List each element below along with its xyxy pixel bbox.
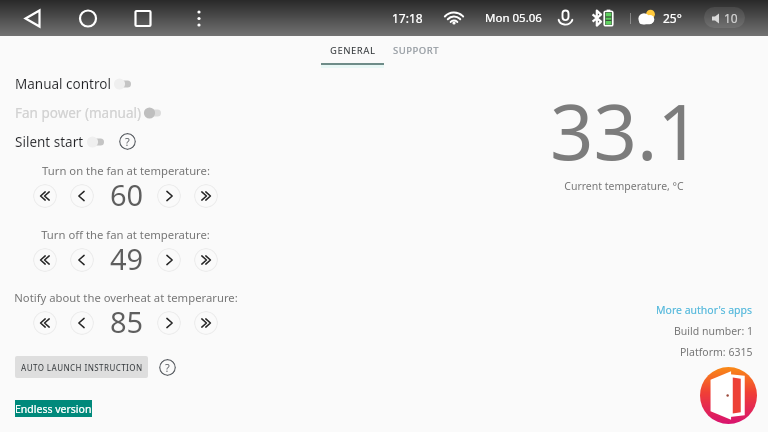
button[interactable]: Decrease fast [33, 184, 57, 208]
button[interactable]: Increase fast [194, 184, 218, 208]
button[interactable]: Manual control [15, 72, 135, 96]
staticText: GENERAL [330, 44, 376, 57]
staticText: 85 [110, 302, 144, 338]
staticText: 17:18 [392, 10, 423, 26]
staticText: 60 [110, 175, 144, 211]
button[interactable]: Help [159, 359, 176, 376]
button[interactable]: Volume [704, 7, 745, 28]
button[interactable]: More options [186, 5, 212, 31]
button[interactable]: Decrease [70, 311, 94, 335]
staticText: ? [125, 134, 130, 149]
button[interactable]: Fan power (manual) [15, 101, 165, 125]
button[interactable]: Decrease [70, 248, 94, 272]
button[interactable]: Home [74, 5, 102, 33]
button[interactable]: Back [18, 5, 46, 33]
staticText: Fan power (manual) [15, 104, 141, 122]
staticText: Turn on the fan at temperature: [42, 163, 210, 178]
staticText: Manual control [15, 75, 111, 93]
staticText: Mon 05.06 [485, 10, 542, 26]
staticText: Current temperature, °C [564, 179, 684, 193]
staticText: AUTO LAUNCH INSTRUCTION [21, 362, 143, 373]
button[interactable]: Endless version [15, 400, 92, 417]
staticText: ? [165, 360, 170, 375]
staticText: Notify about the overheat at temperarure… [14, 290, 238, 305]
staticText: Turn off the fan at temperature: [41, 227, 210, 242]
staticText: Build number: 1 [674, 324, 753, 338]
staticText: Platform: 6315 [680, 345, 753, 359]
staticText: SUPPORT [393, 44, 440, 57]
staticText: 49 [110, 239, 144, 275]
button[interactable]: Increase [157, 311, 181, 335]
button[interactable]: Recent apps [129, 5, 157, 33]
staticText: Silent start [15, 133, 84, 151]
button[interactable]: Decrease fast [33, 311, 57, 335]
staticText: 10 [724, 10, 738, 26]
button[interactable]: Increase [157, 184, 181, 208]
button[interactable]: Decrease fast [33, 248, 57, 272]
button[interactable]: Open app [700, 367, 757, 424]
button[interactable]: Decrease [70, 184, 94, 208]
staticText: 33.1 [550, 79, 701, 169]
button[interactable]: Help [119, 133, 136, 150]
button[interactable]: SUPPORT [386, 38, 447, 63]
button[interactable]: Increase fast [194, 311, 218, 335]
staticText: 25° [663, 10, 682, 26]
staticText: Endless version [15, 402, 92, 416]
staticText: More author's apps [656, 303, 753, 317]
button[interactable]: GENERAL [321, 38, 384, 63]
button[interactable]: More author's apps [656, 303, 753, 317]
button[interactable]: Increase fast [194, 248, 218, 272]
button[interactable]: Silent start [15, 130, 108, 154]
button[interactable]: Increase [157, 248, 181, 272]
button[interactable]: AUTO LAUNCH INSTRUCTION [15, 356, 148, 378]
